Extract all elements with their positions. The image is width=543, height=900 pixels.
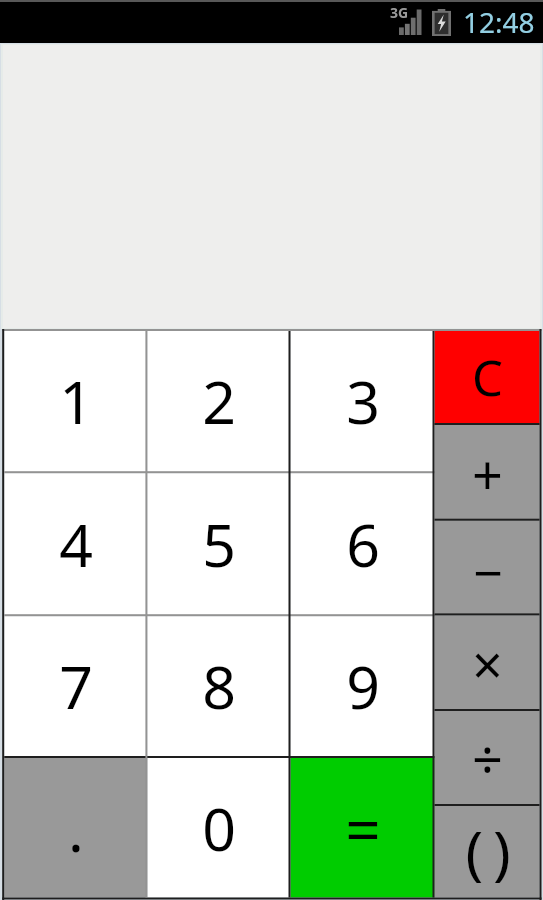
staticText: ÷: [472, 722, 503, 796]
staticText: 3G: [390, 3, 409, 22]
staticText: −: [473, 536, 503, 607]
button[interactable]: C: [435, 331, 540, 425]
button[interactable]: ÷: [435, 711, 540, 806]
staticText: 2: [202, 361, 236, 441]
staticText: 9: [346, 646, 380, 726]
button[interactable]: .: [4, 758, 147, 898]
button[interactable]: 1: [4, 331, 147, 473]
staticText: 3: [346, 361, 380, 441]
staticText: ( ): [465, 811, 511, 891]
button[interactable]: 3: [291, 331, 435, 473]
staticText: C: [472, 344, 503, 411]
staticText: 12:48: [463, 3, 535, 41]
button[interactable]: 9: [291, 616, 435, 758]
staticText: 0: [202, 788, 236, 868]
staticText: 5: [202, 504, 236, 584]
button[interactable]: 4: [4, 473, 147, 616]
button[interactable]: +: [435, 425, 540, 521]
other: Signal strength: [399, 9, 423, 35]
button[interactable]: 8: [147, 616, 290, 758]
staticText: .: [68, 789, 84, 869]
button[interactable]: 5: [147, 473, 290, 616]
staticText: 1: [59, 361, 93, 441]
button[interactable]: =: [291, 758, 435, 898]
staticText: 4: [59, 504, 93, 584]
button[interactable]: 0: [147, 758, 290, 898]
button[interactable]: 6: [291, 473, 435, 616]
button[interactable]: ×: [435, 615, 540, 711]
staticText: 7: [59, 646, 93, 726]
button[interactable]: 2: [147, 331, 290, 473]
other: Battery charging: [432, 9, 451, 36]
staticText: 8: [202, 646, 236, 726]
button[interactable]: 7: [4, 616, 147, 758]
staticText: 6: [346, 504, 380, 584]
staticText: +: [472, 437, 503, 511]
staticText: =: [345, 787, 381, 871]
staticText: ×: [472, 627, 503, 701]
button[interactable]: ( ): [435, 806, 540, 898]
button[interactable]: −: [435, 521, 540, 616]
